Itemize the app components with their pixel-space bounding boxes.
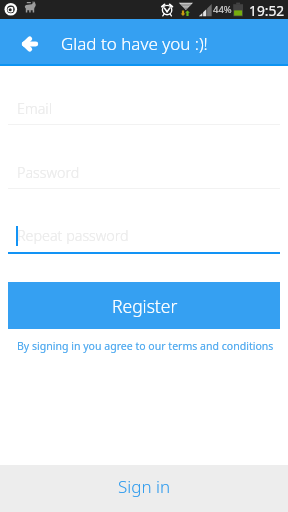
button[interactable]: Sign in — [0, 465, 288, 512]
staticText: Register — [112, 294, 178, 318]
staticText: Email — [17, 99, 52, 118]
staticText: Repeat password — [17, 226, 129, 245]
staticText: Sign in — [118, 475, 171, 498]
button[interactable]: By signing in you agree to our terms and… — [0, 337, 288, 351]
staticText: Password — [17, 163, 80, 182]
button[interactable]: Repeat password — [8, 230, 280, 254]
staticText: By signing in you agree to our terms and… — [17, 339, 274, 353]
button[interactable]: Register — [8, 282, 280, 329]
staticText: Glad to have you :)! — [61, 32, 208, 55]
button[interactable]: Email — [8, 101, 280, 125]
button[interactable]: Back — [14, 28, 46, 60]
staticText: 44% — [213, 3, 232, 16]
button[interactable]: Password — [8, 165, 280, 189]
staticText: 19:52 — [249, 1, 285, 20]
